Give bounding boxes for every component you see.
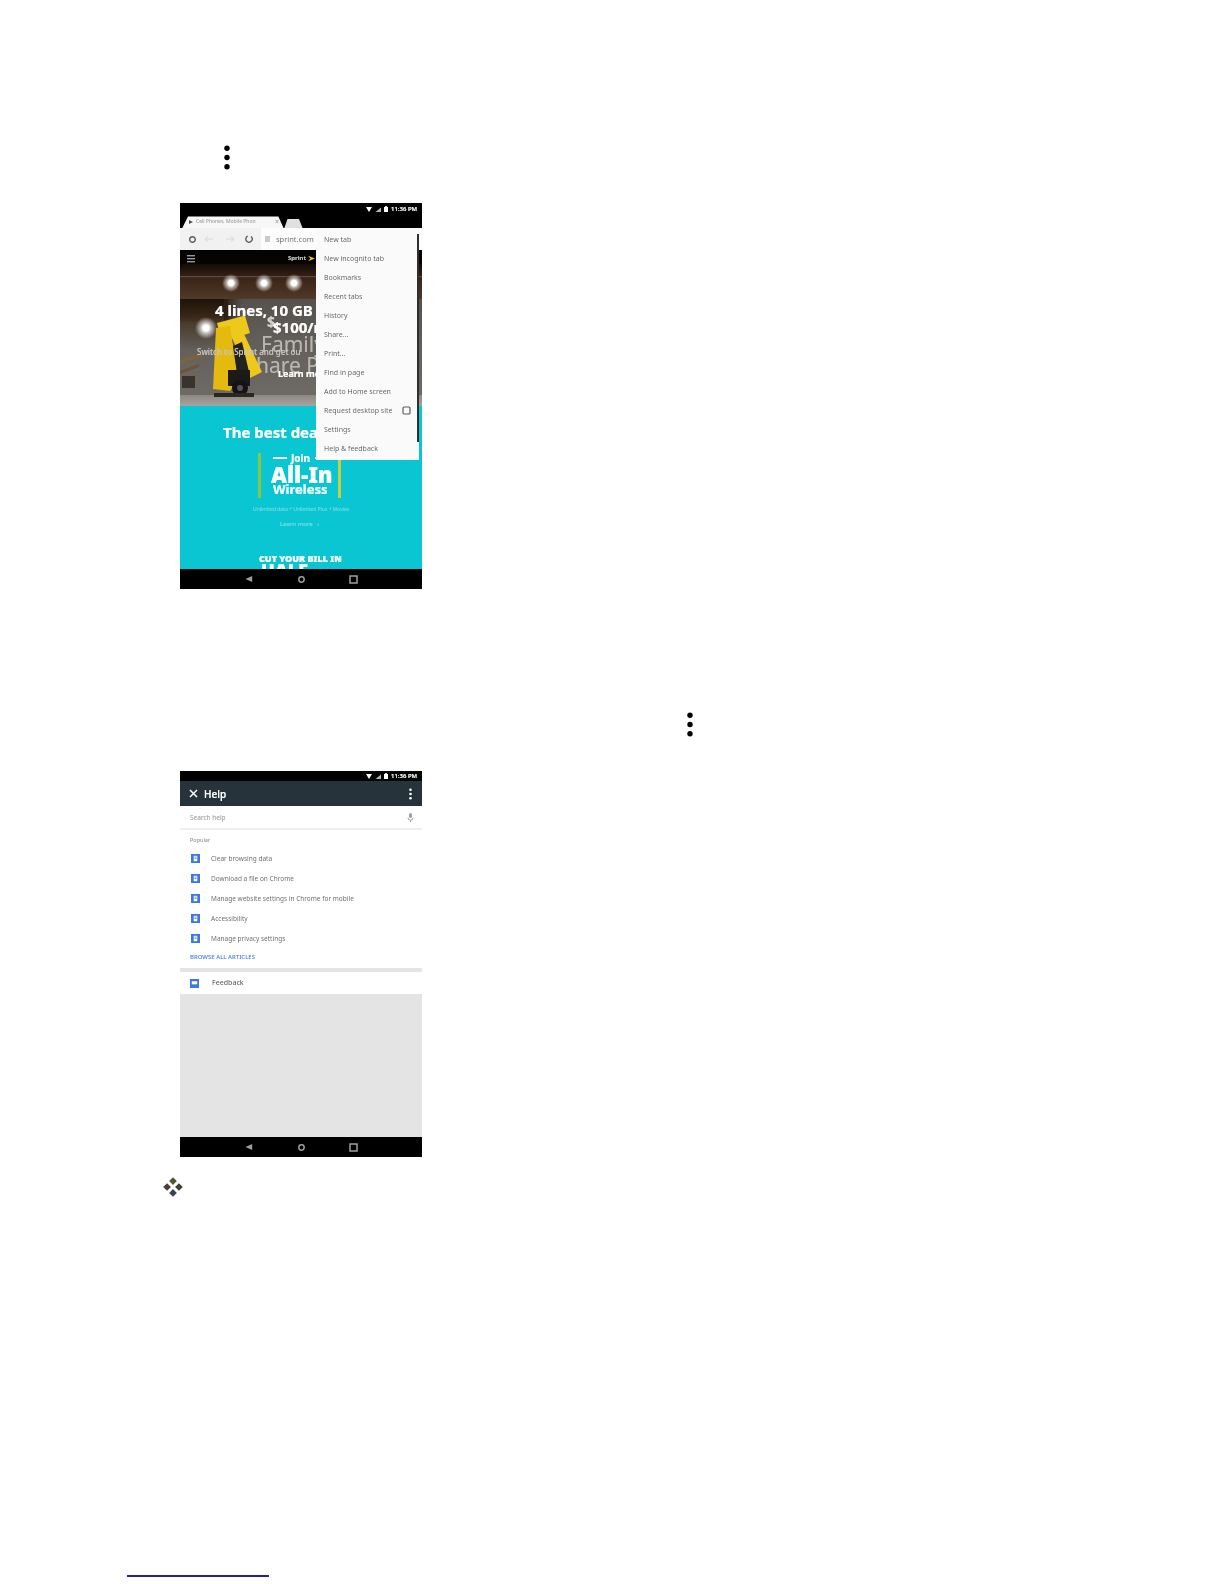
staticText: Cell Phones, Mobile Phon	[196, 218, 256, 225]
staticText: Help & feedback	[324, 444, 378, 454]
staticText: Settings	[324, 425, 351, 435]
staticText: hare Pl	[256, 351, 325, 380]
button[interactable]: Feedback	[180, 972, 422, 994]
staticText: HALF	[261, 558, 309, 583]
staticText: Add to Home screen	[324, 387, 391, 397]
staticText: $100/mo	[273, 317, 338, 337]
staticText: 11:36 PM	[391, 772, 418, 780]
staticText: 11:36 PM	[391, 205, 418, 213]
button[interactable]: New incognito tab	[316, 249, 419, 268]
button[interactable]: Recents	[346, 1140, 360, 1154]
button[interactable]: Accessibility	[180, 908, 422, 928]
button[interactable]: Manage privacy settings	[180, 928, 422, 948]
staticText: Clear browsing data	[211, 854, 273, 863]
staticText: $	[267, 312, 276, 331]
staticText: Unlimited data + Unlimited Plus + Movies	[253, 506, 350, 513]
button[interactable]: Share…	[316, 325, 419, 344]
button[interactable]: Request desktop site	[316, 401, 419, 420]
staticText: Manage website settings in Chrome for mo…	[211, 894, 354, 903]
button[interactable]: Download a file on Chrome	[180, 868, 422, 888]
button[interactable]: Voice search	[404, 811, 416, 823]
button[interactable]: Add to Home screen	[316, 382, 419, 401]
staticText: Switch to Sprint and get ou	[197, 346, 301, 357]
button[interactable]: More options	[214, 145, 239, 170]
button[interactable]: More options	[677, 712, 702, 737]
staticText: Manage privacy settings	[211, 934, 286, 943]
staticText: Find in page	[324, 368, 365, 378]
button[interactable]: Back	[242, 572, 256, 586]
staticText: Request desktop site	[324, 406, 393, 416]
staticText: Search help	[190, 813, 226, 822]
button[interactable]: Reload	[241, 228, 257, 250]
staticText: Help	[204, 787, 227, 801]
staticText: BROWSE ALL ARTICLES	[190, 953, 255, 961]
staticText: Share…	[324, 330, 349, 340]
button[interactable]: Home	[184, 228, 200, 250]
staticText: Join	[291, 451, 311, 465]
button[interactable]: Settings	[316, 420, 419, 439]
button[interactable]: Forward	[222, 228, 238, 250]
staticText: CUT YOUR BILL IN	[259, 552, 342, 564]
button[interactable]: Cell Phones, Mobile Phon	[183, 215, 284, 228]
staticText: 4 lines, 10 GB	[215, 300, 313, 320]
staticText: New tab	[324, 235, 352, 245]
button[interactable]: Recent tabs	[316, 287, 419, 306]
button[interactable]: Help & feedback	[316, 439, 419, 458]
button[interactable]: More options	[403, 786, 418, 801]
staticText: Download a file on Chrome	[211, 874, 294, 883]
staticText: All-In	[271, 459, 333, 489]
button[interactable]: Find in page	[316, 363, 419, 382]
staticText: Popular	[190, 836, 211, 843]
button[interactable]: Bookmarks	[316, 268, 419, 287]
staticText: Learn more ›	[280, 520, 320, 528]
button[interactable]: History	[316, 306, 419, 325]
button[interactable]: Back	[201, 228, 217, 250]
button[interactable]: BROWSE ALL ARTICLES	[180, 948, 422, 966]
staticText: Family	[261, 330, 325, 359]
button[interactable]: Clear browsing data	[180, 848, 422, 868]
staticText: The best deal	[223, 422, 323, 442]
staticText: Accessibility	[211, 914, 248, 923]
staticText: Learn more	[278, 367, 330, 379]
staticText: Sprint	[288, 254, 307, 262]
button[interactable]: New tab	[316, 230, 419, 249]
staticText: ×	[275, 217, 280, 227]
button[interactable]: Home	[294, 572, 308, 586]
button[interactable]: Home	[294, 1140, 308, 1154]
staticText: New incognito tab	[324, 254, 384, 264]
button[interactable]: Back	[242, 1140, 256, 1154]
button[interactable]: Manage website settings in Chrome for mo…	[180, 888, 422, 908]
button[interactable]: Close	[187, 787, 200, 800]
staticText: Bookmarks	[324, 273, 362, 283]
staticText: Wireless	[273, 480, 328, 498]
staticText: Print…	[324, 349, 346, 359]
staticText: History	[324, 311, 348, 321]
staticText: Recent tabs	[324, 292, 363, 302]
staticText: Feedback	[212, 978, 244, 988]
button[interactable]: Print…	[316, 344, 419, 363]
button[interactable]: Recents	[346, 572, 360, 586]
staticText: sprint.com	[276, 234, 314, 244]
